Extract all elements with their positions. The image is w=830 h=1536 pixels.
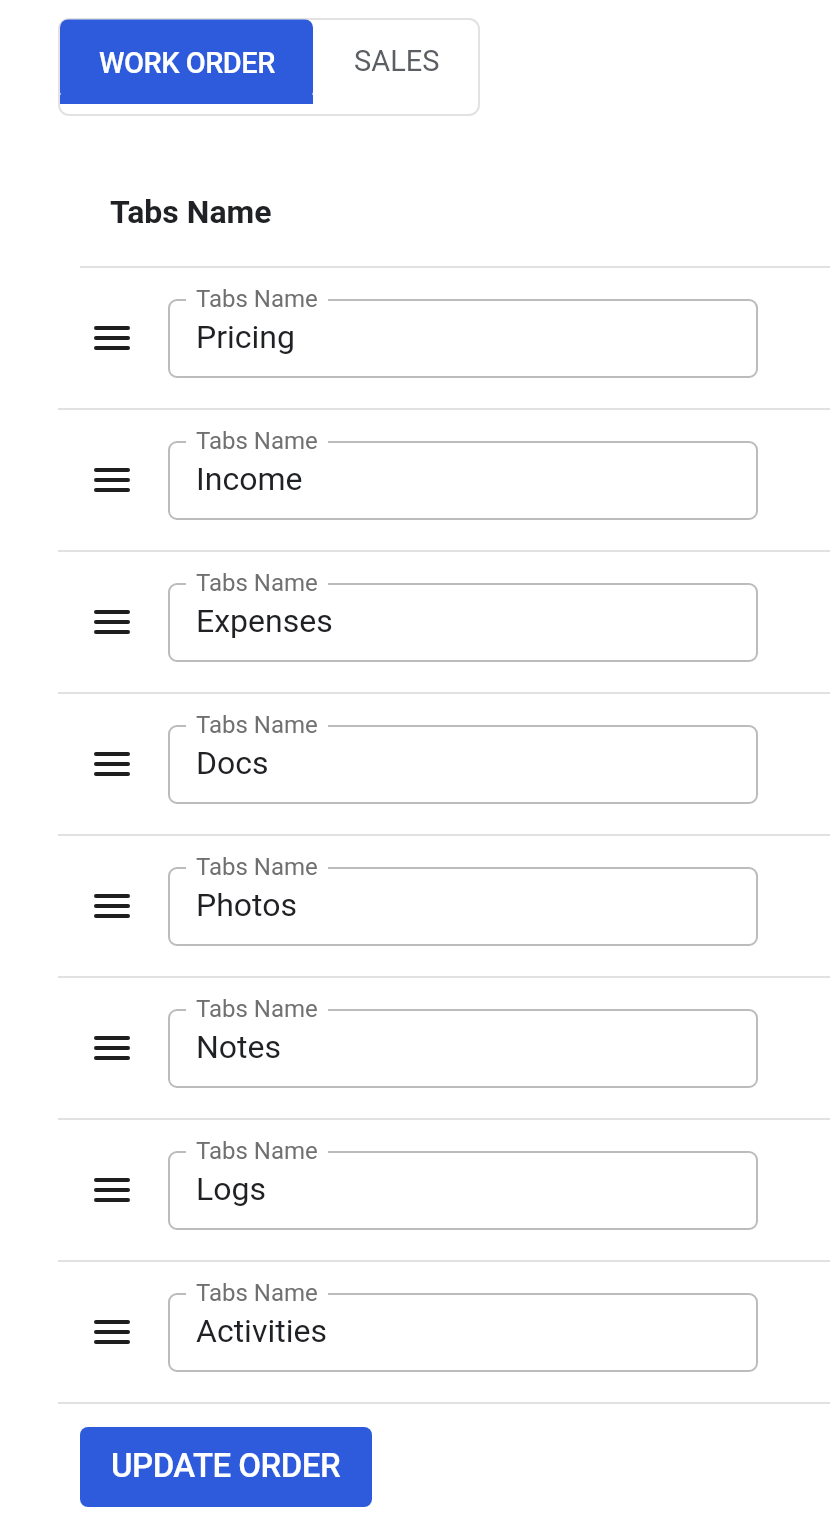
staticText: Expenses xyxy=(196,602,333,640)
button[interactable]: Reorder Docs xyxy=(82,734,142,794)
staticText: Tabs Name xyxy=(110,193,272,231)
button[interactable]: Reorder Notes xyxy=(82,1018,142,1078)
staticText: Tabs Name xyxy=(196,285,318,313)
button[interactable]: Income xyxy=(168,441,758,520)
button[interactable]: SALES xyxy=(313,18,480,116)
button[interactable]: Notes xyxy=(168,1009,758,1088)
staticText: Logs xyxy=(196,1170,266,1208)
button[interactable]: WORK ORDER xyxy=(58,18,313,116)
staticText: Tabs Name xyxy=(196,995,318,1023)
button[interactable]: Reorder Pricing xyxy=(82,308,142,368)
button[interactable]: Photos xyxy=(168,867,758,946)
staticText: Tabs Name xyxy=(196,853,318,881)
staticText: Docs xyxy=(196,744,269,782)
staticText: Photos xyxy=(196,886,297,924)
button[interactable]: Reorder Activities xyxy=(82,1302,142,1362)
staticText: Tabs Name xyxy=(196,1137,318,1165)
button[interactable]: Reorder Photos xyxy=(82,876,142,936)
button[interactable]: Reorder Income xyxy=(82,450,142,510)
staticText: Pricing xyxy=(196,318,295,356)
staticText: Activities xyxy=(196,1312,327,1350)
staticText: UPDATE ORDER xyxy=(111,1446,341,1485)
staticText: Tabs Name xyxy=(196,711,318,739)
staticText: Income xyxy=(196,460,303,498)
staticText: Notes xyxy=(196,1028,282,1066)
staticText: Tabs Name xyxy=(196,1279,318,1307)
button[interactable]: Logs xyxy=(168,1151,758,1230)
staticText: Tabs Name xyxy=(196,427,318,455)
button[interactable]: Reorder Expenses xyxy=(82,592,142,652)
button[interactable]: Reorder Logs xyxy=(82,1160,142,1220)
button[interactable]: Activities xyxy=(168,1293,758,1372)
staticText: WORK ORDER xyxy=(99,46,275,80)
staticText: Tabs Name xyxy=(196,569,318,597)
button[interactable]: UPDATE ORDER xyxy=(80,1427,372,1507)
button[interactable]: Docs xyxy=(168,725,758,804)
staticText: SALES xyxy=(354,44,440,78)
button[interactable]: Expenses xyxy=(168,583,758,662)
button[interactable]: Pricing xyxy=(168,299,758,378)
